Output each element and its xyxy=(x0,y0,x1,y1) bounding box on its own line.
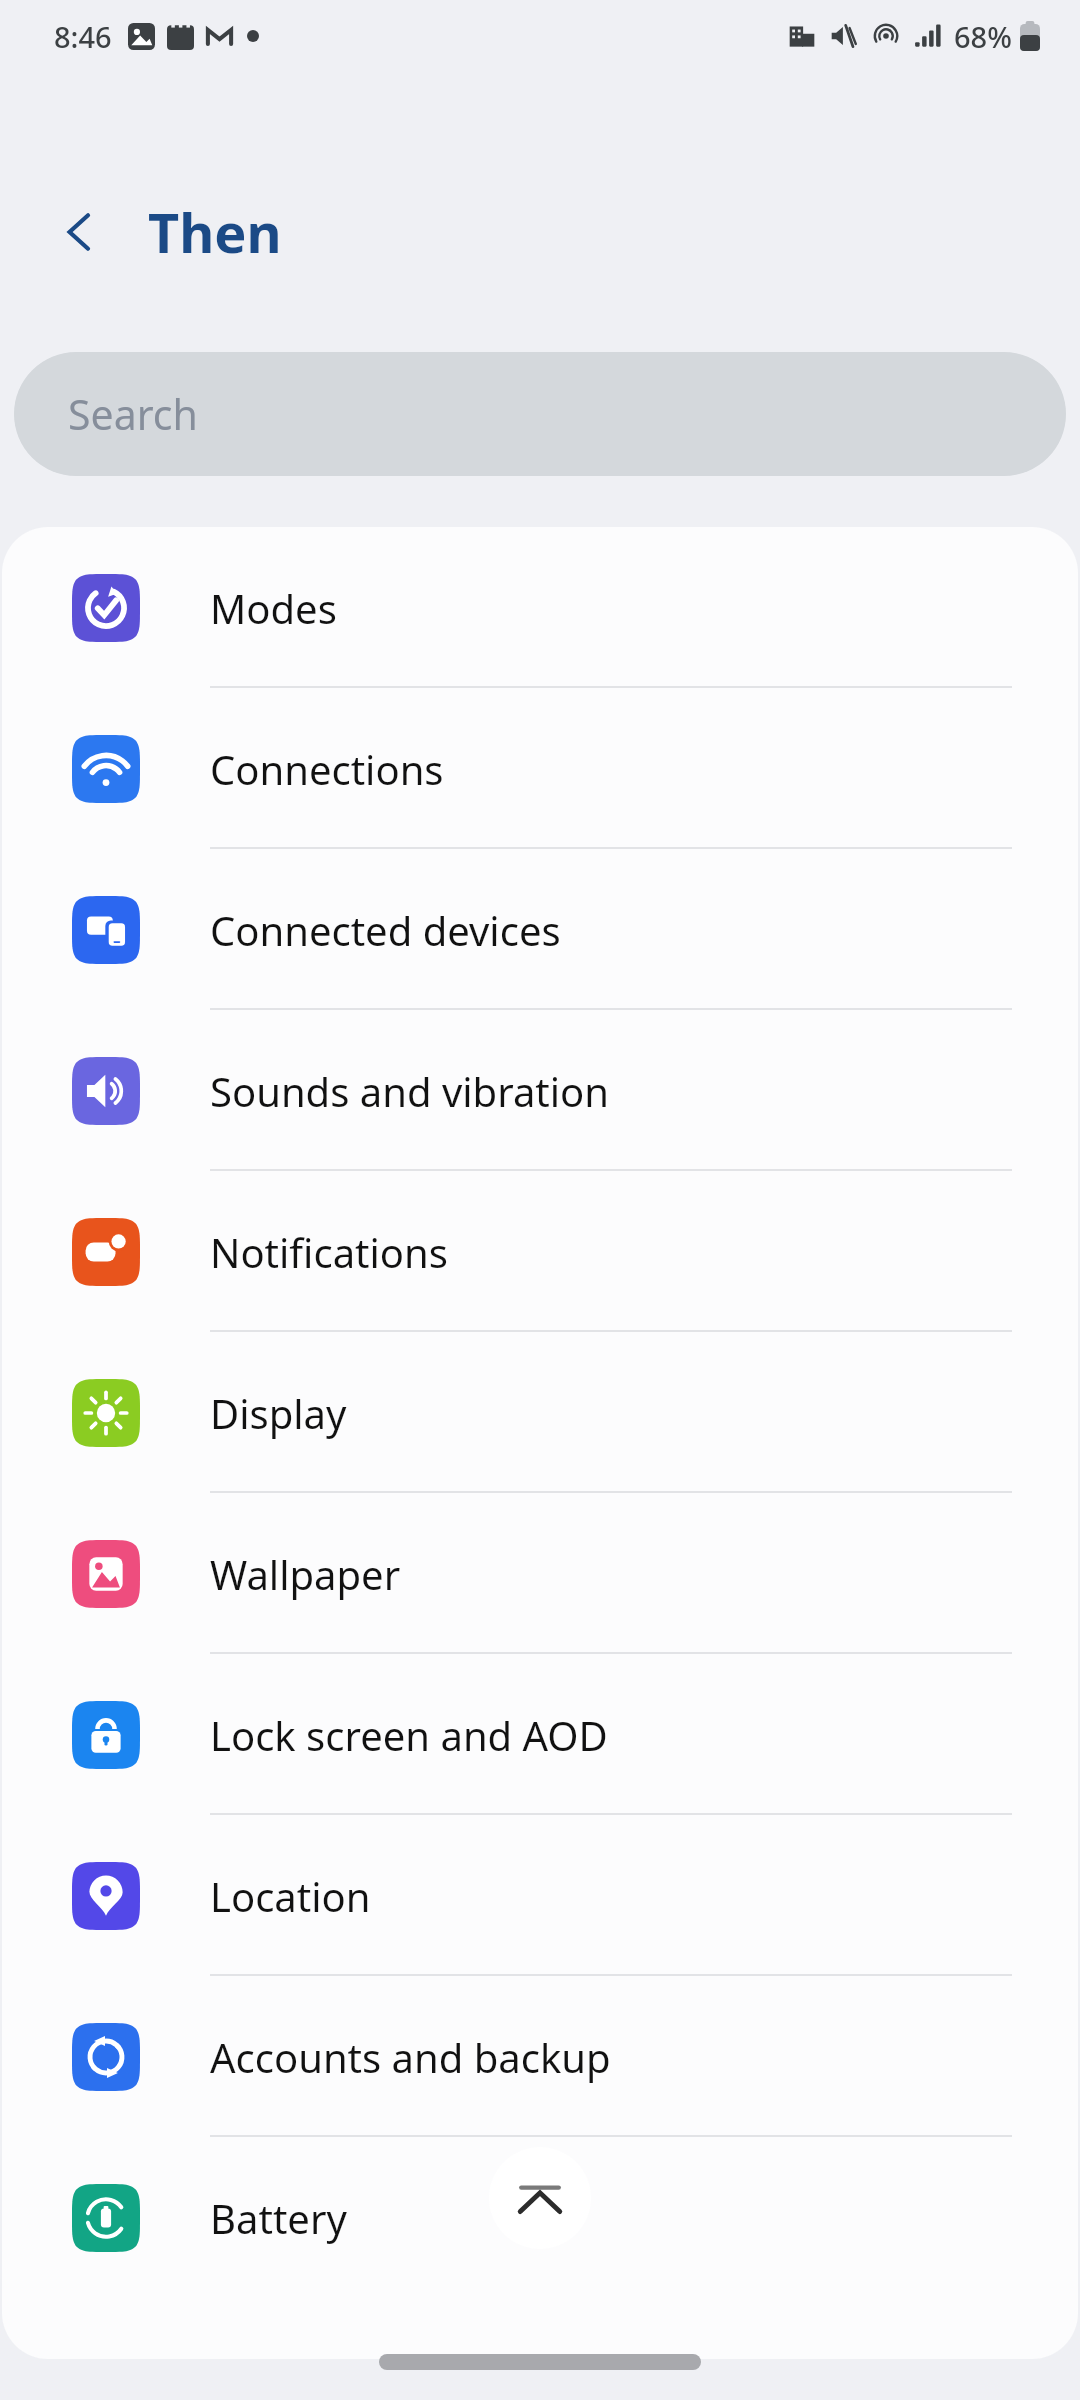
staticText: Then xyxy=(148,195,282,269)
staticText: Modes xyxy=(210,581,337,635)
button[interactable]: Lock screen and AOD xyxy=(2,1654,1078,1815)
button[interactable]: Notifications xyxy=(2,1171,1078,1332)
staticText: Battery xyxy=(210,2191,347,2245)
button[interactable]: Wallpaper xyxy=(2,1493,1078,1654)
staticText: Notifications xyxy=(210,1225,448,1279)
staticText: Connections xyxy=(210,742,444,796)
button[interactable]: Sounds and vibration xyxy=(2,1010,1078,1171)
button[interactable]: Scroll to top xyxy=(489,2147,591,2249)
staticText: Lock screen and AOD xyxy=(210,1708,608,1762)
button[interactable]: Location xyxy=(2,1815,1078,1976)
staticText: 68% xyxy=(954,17,1012,56)
button[interactable]: Battery xyxy=(2,2137,1078,2298)
staticText: Display xyxy=(210,1386,347,1440)
button[interactable]: Back xyxy=(44,195,118,269)
staticText: Search xyxy=(68,386,198,442)
staticText: Wallpaper xyxy=(210,1547,401,1601)
staticText: Connected devices xyxy=(210,903,561,957)
button[interactable]: Connected devices xyxy=(2,849,1078,1010)
button[interactable]: Modes xyxy=(2,527,1078,688)
staticText: Accounts and backup xyxy=(210,2030,611,2084)
button[interactable]: Display xyxy=(2,1332,1078,1493)
button[interactable]: Connections xyxy=(2,688,1078,849)
staticText: Sounds and vibration xyxy=(210,1064,609,1118)
button[interactable]: Search xyxy=(14,352,1066,476)
button[interactable]: Accounts and backup xyxy=(2,1976,1078,2137)
staticText: 8:46 xyxy=(54,17,112,56)
staticText: Location xyxy=(210,1869,371,1923)
